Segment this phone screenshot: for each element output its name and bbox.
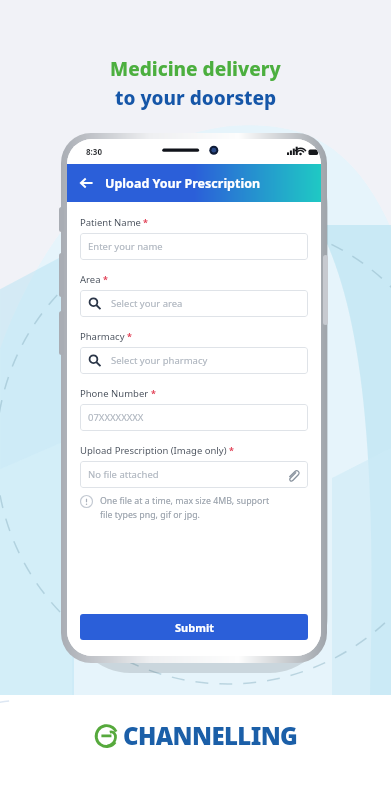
staticText: * xyxy=(229,444,234,456)
staticText: Upload Prescription (Image only) xyxy=(80,444,227,457)
button[interactable]: Attach file xyxy=(284,467,300,483)
button[interactable]: Select your pharmacy xyxy=(80,347,308,374)
staticText: Medicine delivery xyxy=(110,56,281,82)
button[interactable]: 07XXXXXXXX xyxy=(80,404,308,431)
staticText: 8:30 xyxy=(86,146,102,157)
staticText: * xyxy=(143,216,148,228)
staticText: Submit xyxy=(175,620,214,635)
staticText: Upload Your Prescription xyxy=(105,175,261,192)
staticText: One file at a time, max size 4MB, suppor… xyxy=(100,495,270,507)
button[interactable]: Submit xyxy=(80,614,308,640)
staticText: No file attached xyxy=(88,468,159,481)
staticText: Patient Name xyxy=(80,216,141,229)
staticText: * xyxy=(127,330,132,342)
staticText: Enter your name xyxy=(88,240,163,253)
staticText: * xyxy=(151,387,156,399)
staticText: * xyxy=(103,273,108,285)
button[interactable]: Enter your name xyxy=(80,233,308,260)
staticText: Select your area xyxy=(111,297,183,310)
staticText: Select your pharmacy xyxy=(111,354,208,367)
button[interactable]: Back xyxy=(75,171,99,195)
staticText: 07XXXXXXXX xyxy=(88,411,144,424)
staticText: Phone Number xyxy=(80,387,149,400)
staticText: file types png, gif or jpg. xyxy=(100,509,200,521)
button[interactable]: Select your area xyxy=(80,290,308,317)
button[interactable]: No file attached xyxy=(80,461,308,488)
staticText: Pharmacy xyxy=(80,330,125,343)
staticText: Area xyxy=(80,273,101,286)
staticText: CHANNELLING xyxy=(123,719,298,752)
staticText: to your doorstep xyxy=(115,85,277,111)
